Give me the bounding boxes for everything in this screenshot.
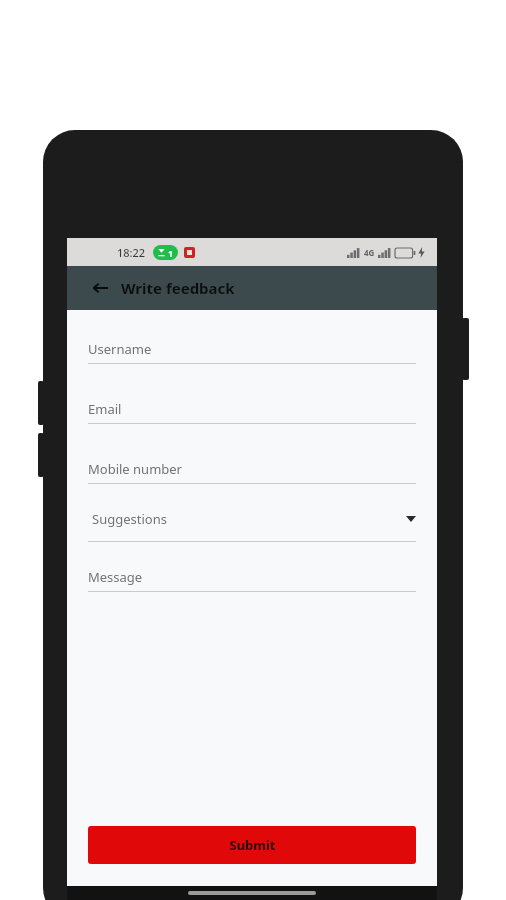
staticText: 4G — [364, 247, 375, 258]
button[interactable]: Mobile number — [88, 460, 416, 484]
button[interactable]: Submit — [88, 826, 416, 864]
button[interactable]: Suggestions — [88, 510, 416, 542]
staticText: Mobile number — [88, 460, 182, 478]
staticText: Suggestions — [92, 510, 167, 528]
staticText: Write feedback — [121, 278, 235, 298]
staticText: 1 — [168, 247, 174, 259]
button[interactable]: Message — [88, 568, 416, 592]
staticText: Email — [88, 400, 122, 418]
staticText: Message — [88, 568, 143, 586]
staticText: Username — [88, 340, 152, 358]
staticText: Submit — [229, 836, 276, 854]
button[interactable]: Username — [88, 340, 416, 364]
button[interactable]: Back — [85, 273, 115, 303]
staticText: 18:22 — [117, 245, 146, 260]
button[interactable]: Email — [88, 400, 416, 424]
